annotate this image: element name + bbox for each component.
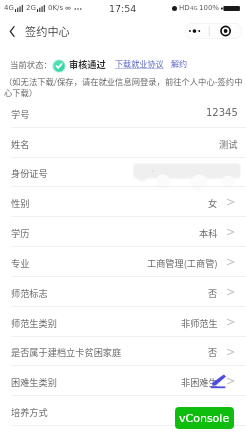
button[interactable]: Back <box>7 23 70 39</box>
staticText: 2G <box>26 4 36 12</box>
button[interactable]: 性别 <box>0 187 246 217</box>
staticText: 姓名 <box>11 137 30 150</box>
staticText: 师范标志 <box>11 286 48 299</box>
staticText: 0K/s <box>48 4 64 12</box>
staticText: 非师范生 <box>181 316 218 329</box>
staticText: 签约中心 <box>25 23 70 39</box>
staticText: 解约 <box>171 58 188 70</box>
staticText: 本科 <box>199 226 218 239</box>
button[interactable]: 身份证号 <box>0 158 246 187</box>
button[interactable]: More options and close <box>185 23 242 39</box>
staticText: 审核通过 <box>69 57 106 70</box>
staticText: 性别 <box>11 196 30 209</box>
staticText: 当前状态： <box>10 58 52 70</box>
staticText: HD <box>179 4 190 12</box>
staticText: 12345 <box>206 107 238 119</box>
staticText: （如无法下载/保存，请在就业信息网登录，前往个人中心-签约中心下载） <box>4 75 245 98</box>
staticText: vConsole <box>179 412 230 425</box>
button[interactable]: 师范生类别 <box>0 307 246 337</box>
staticText: 否 <box>208 286 218 299</box>
staticText: 培养方式 <box>11 405 48 418</box>
button[interactable]: 培养方式 <box>0 396 246 426</box>
staticText: 4G <box>4 4 14 12</box>
button[interactable]: 下载就业协议 <box>115 58 164 70</box>
staticText: 学号 <box>11 107 30 120</box>
button[interactable]: 解约 <box>171 58 188 70</box>
other: Back <box>7 25 18 38</box>
staticText: 非困难生 <box>181 375 218 388</box>
staticText: 下载就业协议 <box>115 58 164 70</box>
staticText: 工商管理(工商管) <box>147 256 218 269</box>
staticText: 师范生类别 <box>11 316 57 329</box>
staticText: 100% <box>199 4 220 12</box>
button[interactable]: 学号 <box>0 98 246 128</box>
button[interactable]: 专业 <box>0 247 246 277</box>
staticText: 测试 <box>219 137 238 150</box>
button[interactable]: 学历 <box>0 217 246 247</box>
button[interactable]: 师范标志 <box>0 277 246 307</box>
button[interactable]: vConsole <box>175 407 234 429</box>
staticText: 17:54 <box>109 3 137 14</box>
staticText: 身份证号 <box>11 166 48 179</box>
staticText: 是否属于建档立卡贫困家庭 <box>11 345 122 358</box>
staticText: 4G <box>190 5 198 11</box>
button[interactable]: 是否属于建档立卡贫困家庭 <box>0 337 246 366</box>
staticText: 困难生类别 <box>11 375 57 388</box>
staticText: 学历 <box>11 226 30 239</box>
button[interactable]: 姓名 <box>0 128 246 158</box>
button[interactable]: 困难生类别 <box>0 366 246 396</box>
staticText: 否 <box>208 345 218 358</box>
staticText: 女 <box>208 196 218 209</box>
staticText: 专业 <box>11 256 30 269</box>
